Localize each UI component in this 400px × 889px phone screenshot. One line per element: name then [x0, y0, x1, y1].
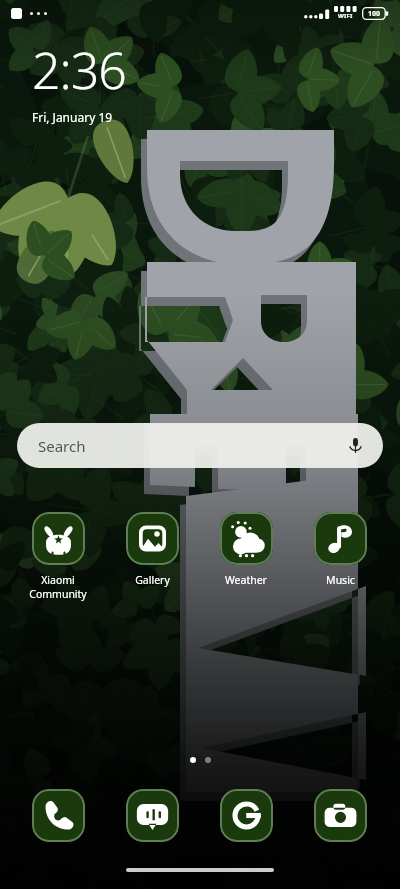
staticText: WIFI [338, 12, 353, 20]
button[interactable]: Messages [126, 789, 179, 842]
button[interactable]: Xiaomi Community [14, 512, 102, 601]
button[interactable]: Phone [32, 789, 85, 842]
button[interactable]: Gallery [108, 512, 196, 587]
staticText: Weather [225, 573, 267, 587]
staticText: 100 [368, 9, 381, 19]
button[interactable]: Music [296, 512, 384, 587]
staticText: Fri, January 19 [32, 109, 113, 125]
staticText: Xiaomi Community [29, 573, 87, 601]
staticText: Search [38, 436, 86, 456]
button[interactable]: Weather [202, 512, 290, 587]
button[interactable]: Search [17, 423, 383, 468]
staticText: Music [326, 573, 355, 587]
button[interactable]: Google Search [220, 789, 273, 842]
button[interactable]: Camera [314, 789, 367, 842]
staticText: 2:36 [32, 36, 126, 104]
staticText: Gallery [135, 573, 170, 587]
